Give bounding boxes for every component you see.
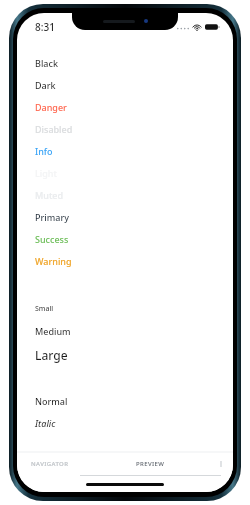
button[interactable]: Small bbox=[35, 298, 219, 320]
staticText: Primary bbox=[35, 211, 69, 223]
staticText: Small bbox=[35, 304, 54, 314]
button[interactable]: Normal bbox=[35, 390, 219, 412]
button[interactable]: NAVIGATOR bbox=[31, 452, 69, 476]
staticText: PREVIEW bbox=[136, 460, 165, 468]
staticText: Muted bbox=[35, 189, 64, 201]
staticText: Warning bbox=[35, 255, 72, 267]
staticText: Success bbox=[35, 233, 69, 245]
staticText: Info bbox=[35, 145, 53, 157]
button[interactable]: Danger bbox=[35, 96, 219, 118]
button[interactable]: Success bbox=[35, 228, 219, 250]
button[interactable]: Disabled bbox=[35, 118, 219, 140]
staticText: Black bbox=[35, 57, 58, 69]
button[interactable]: Warning bbox=[35, 250, 219, 272]
button[interactable]: Primary bbox=[35, 206, 219, 228]
staticText: Normal bbox=[35, 395, 68, 407]
button[interactable]: Dark bbox=[35, 74, 219, 96]
staticText: Light bbox=[35, 167, 57, 179]
button[interactable]: Black bbox=[35, 52, 219, 74]
button[interactable]: Medium bbox=[35, 320, 219, 342]
button[interactable]: Large bbox=[35, 342, 219, 368]
staticText: Danger bbox=[35, 101, 67, 113]
staticText: Disabled bbox=[35, 123, 73, 135]
staticText: NAVIGATOR bbox=[31, 460, 69, 468]
button[interactable]: Info bbox=[35, 140, 219, 162]
staticText: Italic bbox=[35, 417, 56, 429]
staticText: Large bbox=[35, 347, 68, 363]
staticText: Dark bbox=[35, 79, 56, 91]
button[interactable]: Italic bbox=[35, 412, 219, 434]
button[interactable]: PREVIEW bbox=[80, 452, 221, 476]
staticText: Medium bbox=[35, 325, 71, 337]
staticText: 8:31 bbox=[35, 20, 55, 34]
